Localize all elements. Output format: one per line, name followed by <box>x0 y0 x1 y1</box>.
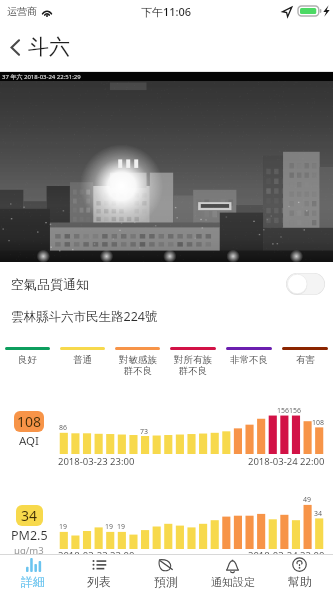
staticText: AQI <box>19 433 39 449</box>
staticText: 34 <box>21 506 38 525</box>
staticText: 良好 <box>18 354 37 366</box>
staticText: µg/m3 <box>14 544 44 554</box>
staticText: 對所有族 群不良 <box>174 354 212 377</box>
staticText: 斗六 <box>28 34 70 60</box>
staticText: 108 <box>312 418 325 428</box>
staticText: 有害 <box>296 354 315 366</box>
staticText: 19 <box>59 522 68 532</box>
staticText: 86 <box>59 423 68 433</box>
button[interactable]: 幫助 <box>266 555 333 592</box>
staticText: PM2.5 <box>11 527 48 544</box>
button[interactable]: 詳細 <box>0 555 66 592</box>
button[interactable]: 預測 <box>132 555 199 592</box>
button[interactable]: 列表 <box>66 555 132 592</box>
staticText: 2018-03-23 23:00 <box>58 549 135 562</box>
staticText: 49 <box>303 495 312 505</box>
staticText: 运营商 <box>7 5 37 18</box>
staticText: 19 <box>117 522 126 532</box>
staticText: 空氣品質通知 <box>11 276 89 292</box>
staticText: 73 <box>140 427 149 437</box>
button[interactable]: 通知設定 <box>199 555 266 592</box>
staticText: 幫助 <box>288 574 312 589</box>
staticText: 2018-03-24 22:00 <box>248 455 325 468</box>
staticText: 19 <box>105 522 114 532</box>
staticText: 2018-03-24 22:00 <box>248 549 325 562</box>
staticText: 2018-03-23 23:00 <box>58 455 135 468</box>
staticText: 108 <box>17 412 42 431</box>
staticText: 37 年六 2018-03-24 22:51:29 <box>2 73 81 81</box>
staticText: 下午11:06 <box>141 4 192 19</box>
staticText: 非常不良 <box>230 354 268 366</box>
button[interactable]: Air quality notification switch <box>286 273 325 295</box>
staticText: 詳細 <box>21 574 45 589</box>
staticText: 通知設定 <box>211 575 255 589</box>
staticText: 156 <box>277 406 290 416</box>
staticText: 156 <box>289 406 302 416</box>
staticText: 列表 <box>87 574 111 589</box>
staticText: 預測 <box>154 574 178 589</box>
staticText: 34 <box>314 509 323 519</box>
staticText: 普通 <box>73 354 92 366</box>
button[interactable]: Back <box>0 28 78 66</box>
staticText: 雲林縣斗六市民生路224號 <box>11 308 158 325</box>
staticText: 對敏感族 群不良 <box>119 354 157 377</box>
